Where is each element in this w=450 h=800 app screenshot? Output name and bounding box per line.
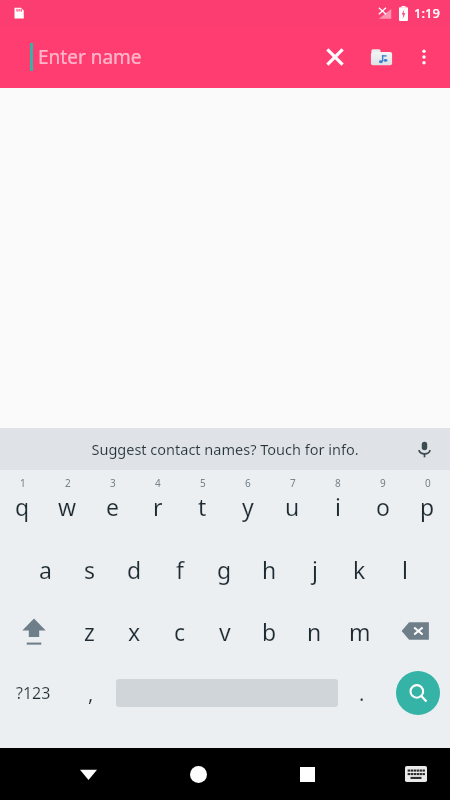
button[interactable]: Home (170, 748, 226, 800)
staticText: 7 (290, 476, 296, 490)
button[interactable]: Recent apps (279, 748, 335, 800)
button[interactable]: g (202, 538, 247, 600)
button[interactable]: Shift (0, 600, 67, 662)
button[interactable]: Backspace (382, 600, 450, 662)
button[interactable]: f (157, 538, 202, 600)
button[interactable]: n (292, 600, 337, 662)
staticText: k (353, 554, 366, 585)
button[interactable]: c (157, 600, 202, 662)
staticText: f (176, 554, 184, 585)
button[interactable]: Hide keyboard (60, 748, 116, 800)
staticText: Suggest contact names? Touch for info. (91, 439, 359, 459)
button[interactable]: 6 (225, 470, 270, 538)
button[interactable]: x (112, 600, 157, 662)
staticText: e (106, 491, 119, 522)
staticText: , (88, 680, 94, 707)
staticText: 0 (425, 476, 431, 490)
staticText: c (174, 616, 186, 647)
staticText: r (153, 491, 163, 522)
button[interactable]: 4 (135, 470, 180, 538)
button[interactable]: z (67, 600, 112, 662)
staticText: 6 (245, 476, 251, 490)
button[interactable]: Search (386, 662, 450, 724)
staticText: w (58, 491, 77, 522)
staticText: 9 (380, 476, 386, 490)
staticText: q (15, 491, 30, 522)
button[interactable]: Enter name (30, 43, 142, 71)
staticText: 3 (110, 476, 116, 490)
button[interactable]: Music folder (358, 34, 404, 80)
staticText: h (262, 554, 277, 585)
button[interactable]: ?123 (0, 662, 66, 724)
button[interactable]: 2 (45, 470, 90, 538)
staticText: t (198, 491, 207, 522)
staticText: a (39, 554, 52, 585)
staticText: b (262, 616, 277, 647)
staticText: 4 (155, 476, 161, 490)
button[interactable]: 1 (0, 470, 45, 538)
staticText: m (349, 616, 371, 647)
button[interactable]: More options (404, 37, 444, 77)
staticText: d (127, 554, 142, 585)
staticText: u (285, 491, 300, 522)
button[interactable]: l (382, 538, 427, 600)
button[interactable]: s (67, 538, 112, 600)
staticText: 1:19 (414, 4, 440, 22)
staticText: l (402, 554, 408, 585)
button[interactable]: b (247, 600, 292, 662)
button[interactable]: j (292, 538, 337, 600)
staticText: z (84, 616, 95, 647)
staticText: x (128, 616, 141, 647)
button[interactable]: 9 (360, 470, 405, 538)
button[interactable]: 0 (405, 470, 450, 538)
button[interactable]: h (247, 538, 292, 600)
button[interactable]: 3 (90, 470, 135, 538)
button[interactable]: 7 (270, 470, 315, 538)
button[interactable]: Voice input (406, 431, 442, 467)
staticText: 2 (65, 476, 71, 490)
staticText: 5 (200, 476, 206, 490)
staticText: v (219, 616, 231, 647)
staticText: . (359, 680, 365, 707)
staticText: o (376, 491, 390, 522)
button[interactable]: m (337, 600, 382, 662)
button[interactable]: Clear (312, 34, 358, 80)
staticText: Enter name (38, 44, 142, 70)
staticText: y (242, 491, 254, 522)
staticText: j (312, 554, 318, 585)
staticText: g (217, 554, 232, 585)
button[interactable]: k (337, 538, 382, 600)
staticText: s (84, 554, 96, 585)
button[interactable]: Suggest contact names? Touch for info. (91, 428, 359, 470)
staticText: i (335, 491, 341, 522)
button[interactable]: d (112, 538, 157, 600)
button[interactable]: a (23, 538, 67, 600)
button[interactable]: v (202, 600, 247, 662)
button[interactable]: . (338, 662, 386, 724)
staticText: 8 (335, 476, 341, 490)
staticText: 1 (20, 476, 26, 490)
button[interactable]: 5 (180, 470, 225, 538)
button[interactable]: Switch keyboard (388, 748, 444, 800)
staticText: ?123 (16, 682, 51, 704)
staticText: n (307, 616, 322, 647)
button[interactable]: 8 (315, 470, 360, 538)
staticText: p (420, 491, 435, 522)
button[interactable]: , (66, 662, 116, 724)
